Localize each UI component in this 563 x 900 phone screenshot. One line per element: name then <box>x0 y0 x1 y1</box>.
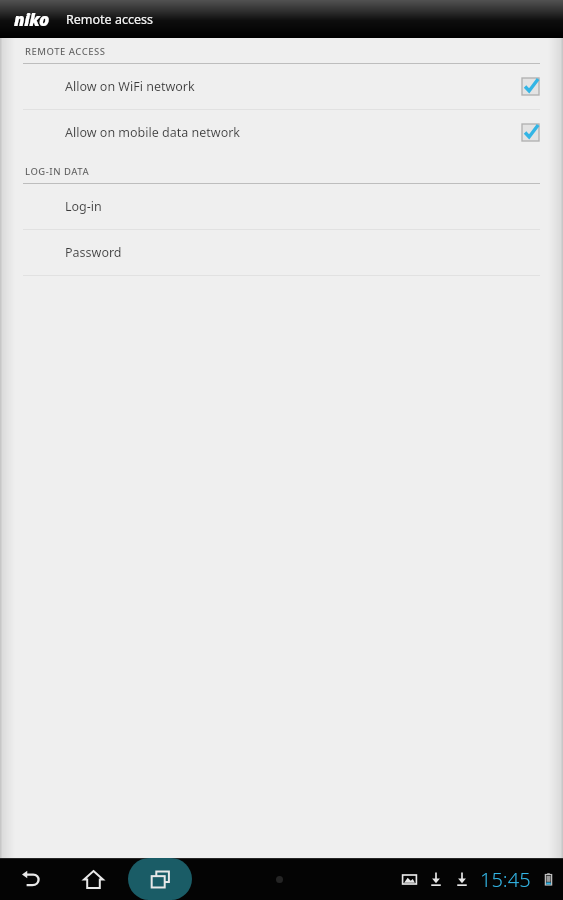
staticText: Allow on mobile data network <box>65 124 522 141</box>
staticText: LOG-IN DATA <box>25 165 90 178</box>
button[interactable]: Battery <box>540 871 556 887</box>
button[interactable]: Download <box>454 871 470 887</box>
button[interactable]: Home <box>70 858 116 900</box>
button[interactable]: Enabled, checked <box>522 78 539 95</box>
button[interactable]: Download <box>428 871 444 887</box>
button[interactable]: Enabled, checked <box>522 124 539 141</box>
staticText: 15:45 <box>480 866 531 893</box>
button[interactable]: Password <box>0 230 563 275</box>
button[interactable]: Log-in <box>0 184 563 229</box>
button[interactable]: Screenshot <box>400 870 418 888</box>
button[interactable]: Allow on WiFi network <box>0 64 563 109</box>
button[interactable]: Back <box>8 858 54 900</box>
staticText: niko <box>14 8 49 31</box>
staticText: Password <box>65 244 122 261</box>
staticText: Allow on WiFi network <box>65 78 522 95</box>
button[interactable]: Recent apps <box>128 858 192 900</box>
staticText: REMOTE ACCESS <box>25 45 106 58</box>
staticText: Log-in <box>65 198 102 215</box>
staticText: Remote access <box>66 11 153 28</box>
button[interactable]: Allow on mobile data network <box>0 110 563 155</box>
